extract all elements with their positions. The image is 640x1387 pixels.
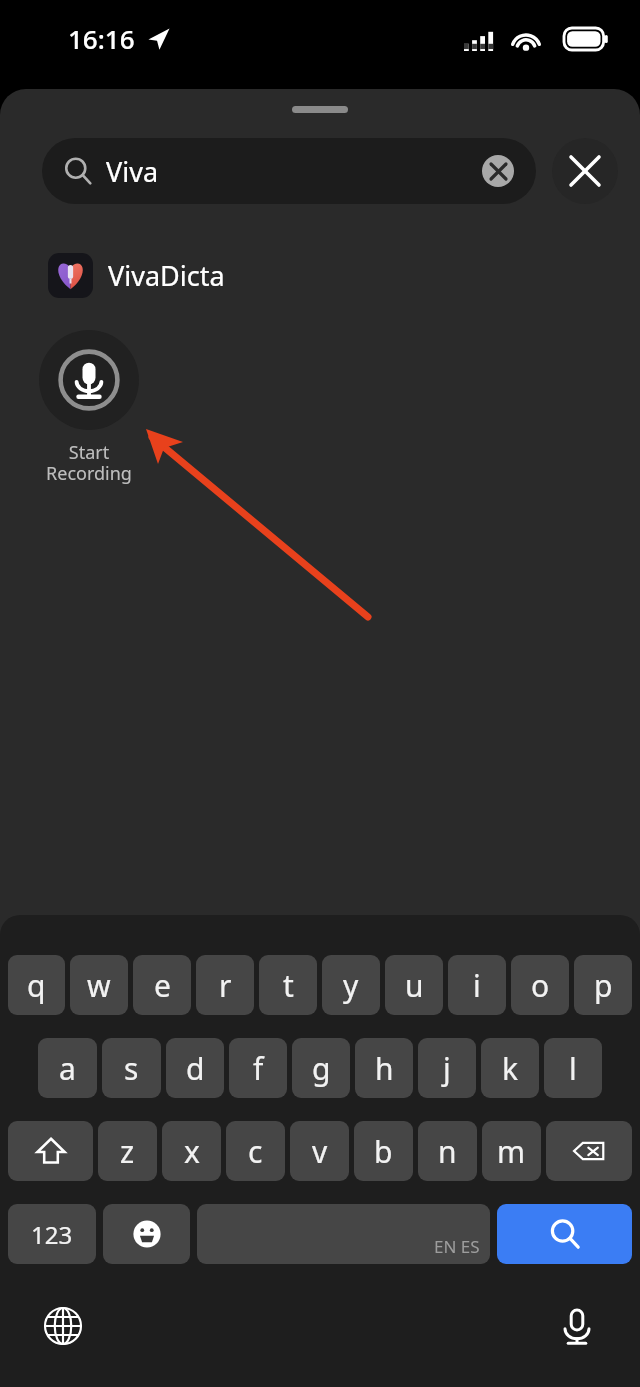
button[interactable]: d [166, 1038, 224, 1098]
button[interactable]: Change language [30, 1293, 96, 1359]
staticText: y [343, 965, 359, 1006]
staticText: Viva [106, 153, 159, 190]
button[interactable]: o [511, 955, 569, 1015]
button[interactable]: Shift [8, 1121, 93, 1181]
staticText: m [497, 1131, 526, 1172]
button[interactable]: Space [197, 1204, 490, 1264]
button[interactable]: h [355, 1038, 413, 1098]
staticText: v [312, 1131, 328, 1172]
staticText: c [248, 1131, 263, 1172]
staticText: f [253, 1048, 264, 1089]
button[interactable]: 123 [8, 1204, 96, 1264]
staticText: j [443, 1048, 451, 1089]
button[interactable]: g [292, 1038, 350, 1098]
staticText: w [87, 965, 111, 1006]
staticText: o [531, 965, 550, 1006]
button[interactable]: p [574, 955, 632, 1015]
staticText: n [438, 1131, 457, 1172]
staticText: b [374, 1131, 393, 1172]
staticText: h [375, 1048, 394, 1089]
button[interactable]: Close [552, 138, 618, 204]
staticText: a [59, 1048, 76, 1089]
button[interactable]: t [259, 955, 317, 1015]
button[interactable]: s [102, 1038, 161, 1098]
staticText: Start Recording [46, 440, 132, 486]
button[interactable]: c [226, 1121, 285, 1181]
button[interactable]: x [162, 1121, 221, 1181]
staticText: d [186, 1048, 205, 1089]
button[interactable]: Search [497, 1204, 632, 1264]
button[interactable]: l [544, 1038, 602, 1098]
button[interactable]: Start Recording [39, 330, 139, 430]
button[interactable]: n [418, 1121, 477, 1181]
button[interactable]: v [290, 1121, 349, 1181]
staticText: e [154, 965, 171, 1006]
button[interactable]: j [418, 1038, 476, 1098]
button[interactable]: m [482, 1121, 541, 1181]
button[interactable]: k [481, 1038, 539, 1098]
button[interactable]: VivaDicta [0, 249, 640, 302]
button[interactable]: e [133, 955, 191, 1015]
button[interactable]: Viva [42, 138, 536, 204]
staticText: 123 [31, 1218, 73, 1251]
staticText: i [473, 965, 481, 1006]
button[interactable]: i [448, 955, 506, 1015]
staticText: s [124, 1048, 139, 1089]
staticText: 16:16 [68, 21, 135, 56]
button[interactable]: b [354, 1121, 413, 1181]
staticText: u [405, 965, 424, 1006]
button[interactable]: Voice input [544, 1293, 610, 1359]
button[interactable]: Backspace [546, 1121, 632, 1181]
button[interactable]: y [322, 955, 380, 1015]
staticText: t [283, 965, 294, 1006]
button[interactable]: q [8, 955, 65, 1015]
staticText: EN ES [434, 1235, 480, 1258]
button[interactable]: r [196, 955, 254, 1015]
staticText: x [184, 1131, 200, 1172]
staticText: q [27, 965, 46, 1006]
staticText: k [502, 1048, 519, 1089]
button[interactable]: u [385, 955, 443, 1015]
button[interactable]: Emoji [103, 1204, 190, 1264]
button[interactable]: z [98, 1121, 157, 1181]
button[interactable]: f [229, 1038, 287, 1098]
staticText: l [569, 1048, 577, 1089]
button[interactable]: Clear text [482, 155, 514, 187]
staticText: r [219, 965, 232, 1006]
staticText: z [120, 1131, 135, 1172]
staticText: g [312, 1048, 331, 1089]
button[interactable]: a [38, 1038, 97, 1098]
button[interactable]: w [70, 955, 128, 1015]
staticText: p [594, 965, 613, 1006]
staticText: VivaDicta [108, 257, 225, 294]
